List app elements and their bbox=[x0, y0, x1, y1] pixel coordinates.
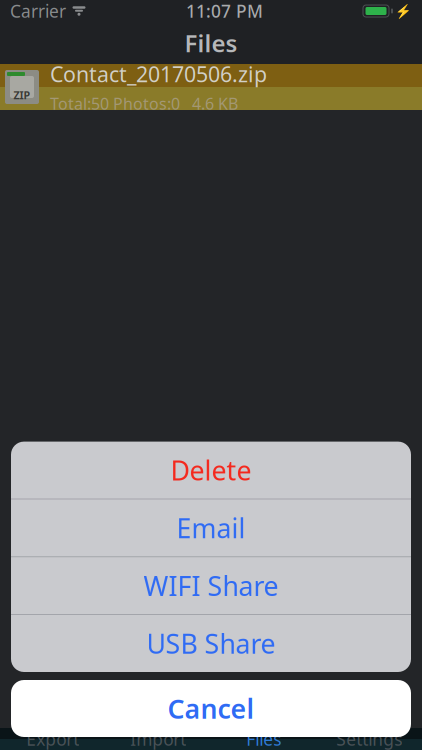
button[interactable]: Delete bbox=[11, 442, 411, 499]
button[interactable]: Files bbox=[211, 728, 316, 750]
button[interactable]: ZIP bbox=[0, 64, 422, 110]
staticText: Total:50 Photos:0 4.6 KB bbox=[50, 93, 238, 114]
button[interactable]: Cancel bbox=[11, 680, 411, 737]
button[interactable]: Email bbox=[11, 499, 411, 556]
staticText: Contact_20170506.zip bbox=[50, 60, 267, 88]
staticText: Import bbox=[130, 727, 186, 750]
staticText: Files bbox=[246, 727, 281, 750]
staticText: Cancel bbox=[167, 691, 254, 726]
staticText: ZIP bbox=[13, 88, 30, 102]
button[interactable]: USB Share bbox=[11, 615, 411, 672]
staticText: Email bbox=[176, 510, 245, 546]
staticText: Export bbox=[26, 727, 79, 750]
staticText: Carrier bbox=[10, 0, 66, 22]
staticText: 11:07 PM bbox=[186, 0, 263, 22]
staticText: USB Share bbox=[146, 626, 275, 661]
button[interactable]: WIFI Share bbox=[11, 557, 411, 614]
button[interactable]: Settings bbox=[316, 728, 422, 750]
staticText: Delete bbox=[170, 452, 251, 488]
staticText: WIFI Share bbox=[143, 568, 278, 603]
button[interactable]: Import bbox=[105, 728, 211, 750]
staticText: Settings bbox=[336, 727, 402, 750]
button[interactable]: Export bbox=[0, 728, 105, 750]
staticText: Files bbox=[184, 27, 237, 59]
staticText: ⚡ bbox=[395, 3, 412, 19]
